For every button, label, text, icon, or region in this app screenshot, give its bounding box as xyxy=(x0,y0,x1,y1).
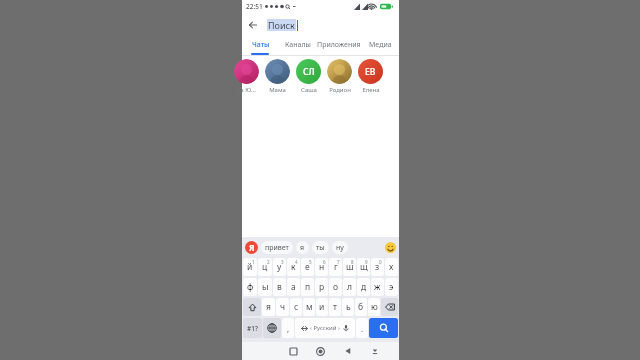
button[interactable]: х xyxy=(385,258,398,276)
staticText: р xyxy=(319,281,325,293)
button[interactable]: д xyxy=(357,278,370,296)
button[interactable]: я xyxy=(262,298,275,316)
button[interactable]: п xyxy=(301,278,314,296)
button[interactable]: й xyxy=(243,258,257,276)
staticText: Приложения xyxy=(317,40,361,50)
button[interactable]: с xyxy=(290,298,302,316)
button[interactable]: э xyxy=(385,278,398,296)
staticText: 9 xyxy=(365,259,368,265)
button[interactable]: г xyxy=(329,258,342,276)
button[interactable]: Change language xyxy=(263,318,281,338)
button[interactable]: ка Ю... xyxy=(231,56,262,100)
staticText: щ xyxy=(360,261,368,273)
button[interactable]: Shift xyxy=(243,298,261,316)
button[interactable]: Keyboard settings xyxy=(245,241,258,254)
button[interactable]: л xyxy=(343,278,356,296)
staticText: б xyxy=(358,301,364,313)
staticText: д xyxy=(361,281,367,293)
staticText: э xyxy=(389,281,394,293)
button[interactable]: ы xyxy=(258,278,272,296)
staticText: ЕВ xyxy=(365,66,376,78)
button[interactable]: н xyxy=(315,258,328,276)
button[interactable]: ‹ Русский › xyxy=(295,318,355,338)
button[interactable]: Медиа xyxy=(362,36,399,53)
button[interactable]: ж xyxy=(371,278,384,296)
button[interactable]: я xyxy=(296,241,309,254)
staticText: н xyxy=(319,261,325,273)
staticText: ф xyxy=(247,281,254,293)
staticText: ‹ Русский › xyxy=(310,324,340,332)
staticText: 2 xyxy=(267,259,270,265)
button[interactable]: ЕВ xyxy=(355,56,386,100)
button[interactable]: б xyxy=(355,298,367,316)
button[interactable]: . xyxy=(356,318,368,338)
button[interactable]: Search xyxy=(369,318,398,338)
button[interactable]: Emoji xyxy=(384,241,397,254)
button[interactable]: Back xyxy=(334,342,361,360)
button[interactable]: привет xyxy=(261,241,293,254)
staticText: т xyxy=(333,301,337,313)
button[interactable]: #1? xyxy=(243,318,262,338)
button[interactable]: Чаты xyxy=(242,36,279,53)
staticText: 6 xyxy=(323,259,326,265)
staticText: #1? xyxy=(247,324,258,333)
button[interactable]: , xyxy=(282,318,294,338)
staticText: Родион xyxy=(329,86,351,94)
button[interactable]: ну xyxy=(332,241,348,254)
button[interactable]: ц xyxy=(258,258,272,276)
button[interactable]: Родион xyxy=(324,56,355,100)
button[interactable]: о xyxy=(329,278,342,296)
button[interactable]: Hide keyboard xyxy=(361,342,388,360)
button[interactable]: Backspace xyxy=(381,298,398,316)
button[interactable]: ш xyxy=(343,258,356,276)
button[interactable]: Home xyxy=(307,342,334,360)
staticText: з xyxy=(375,261,380,273)
button[interactable]: м xyxy=(303,298,315,316)
staticText: Я xyxy=(249,242,255,253)
staticText: я xyxy=(300,243,305,253)
button[interactable]: е xyxy=(301,258,314,276)
button[interactable]: Recents xyxy=(280,342,307,360)
staticText: у xyxy=(277,261,282,273)
button[interactable]: в xyxy=(273,278,286,296)
button[interactable]: ф xyxy=(243,278,257,296)
button[interactable]: Приложения xyxy=(316,36,362,53)
button[interactable]: з xyxy=(371,258,384,276)
staticText: г xyxy=(334,261,338,273)
staticText: п xyxy=(305,281,311,293)
staticText: 22:51 xyxy=(246,2,263,11)
staticText: м xyxy=(306,301,313,313)
button[interactable]: ю xyxy=(368,298,380,316)
staticText: ь xyxy=(346,301,351,313)
staticText: й xyxy=(247,261,253,273)
button[interactable]: ч xyxy=(276,298,289,316)
staticText: 0 xyxy=(379,259,382,265)
button[interactable]: к xyxy=(287,258,300,276)
staticText: ш xyxy=(346,261,354,273)
button[interactable]: Мама xyxy=(262,56,293,100)
staticText: 3 xyxy=(281,259,284,265)
staticText: Елена xyxy=(362,86,380,94)
button[interactable]: Каналы xyxy=(279,36,316,53)
staticText: и xyxy=(319,301,325,313)
button[interactable]: Back xyxy=(242,14,264,36)
button[interactable]: щ xyxy=(357,258,370,276)
staticText: л xyxy=(347,281,352,293)
staticText: ы xyxy=(262,281,269,293)
button[interactable]: а xyxy=(287,278,300,296)
button[interactable]: у xyxy=(273,258,286,276)
button[interactable]: ты xyxy=(312,241,329,254)
staticText: 7 xyxy=(337,259,340,265)
staticText: Саша xyxy=(301,86,317,94)
button[interactable]: ь xyxy=(342,298,354,316)
button[interactable]: СЛ xyxy=(293,56,324,100)
button[interactable]: т xyxy=(329,298,341,316)
staticText: к xyxy=(291,261,296,273)
staticText: ю xyxy=(371,301,378,313)
staticText: ц xyxy=(262,261,268,273)
button[interactable]: р xyxy=(315,278,328,296)
button[interactable]: и xyxy=(316,298,328,316)
staticText: Мама xyxy=(269,86,286,94)
staticText: Медиа xyxy=(369,40,392,50)
staticText: СЛ xyxy=(303,66,315,78)
